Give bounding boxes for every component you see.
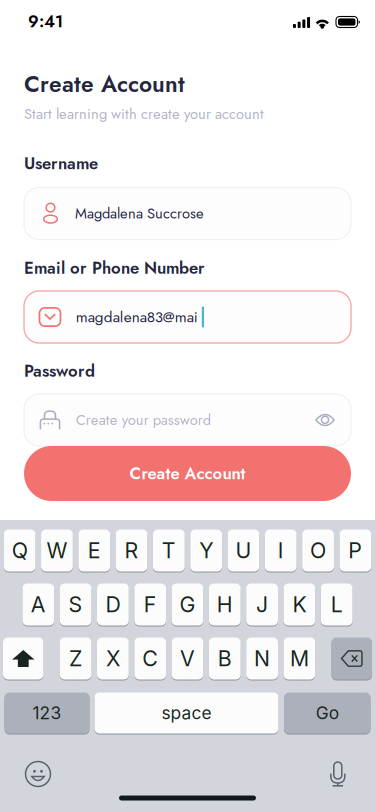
staticText: Y: [199, 538, 213, 563]
button[interactable]: N: [246, 637, 278, 680]
staticText: Username: [24, 151, 98, 176]
staticText: Z: [69, 646, 82, 671]
staticText: Password: [24, 359, 95, 383]
staticText: Start learning with create your account: [24, 103, 264, 125]
button[interactable]: Magdalena Succrose: [24, 187, 351, 239]
staticText: H: [217, 592, 233, 617]
button[interactable]: A: [22, 583, 54, 626]
staticText: E: [88, 538, 101, 563]
button[interactable]: Emoji keyboard: [25, 761, 50, 786]
button[interactable]: Z: [60, 637, 91, 680]
button[interactable]: space: [94, 692, 278, 734]
button[interactable]: E: [78, 529, 110, 572]
staticText: R: [124, 538, 138, 563]
staticText: D: [105, 592, 120, 617]
staticText: G: [179, 592, 195, 617]
button[interactable]: K: [283, 583, 315, 626]
staticText: N: [254, 646, 270, 671]
button[interactable]: X: [97, 637, 129, 680]
button[interactable]: G: [172, 583, 203, 626]
button[interactable]: V: [172, 637, 203, 680]
staticText: A: [31, 592, 46, 617]
button[interactable]: R: [116, 529, 147, 572]
staticText: X: [106, 646, 120, 671]
staticText: O: [310, 538, 326, 563]
button[interactable]: M: [283, 637, 315, 680]
button[interactable]: D: [97, 583, 129, 626]
staticText: J: [256, 592, 268, 617]
button[interactable]: Delete: [331, 637, 372, 680]
button[interactable]: B: [209, 637, 241, 680]
staticText: P: [348, 538, 362, 563]
button[interactable]: J: [246, 583, 278, 626]
staticText: 123: [32, 702, 61, 723]
button[interactable]: Create Account: [24, 446, 351, 501]
staticText: U: [235, 538, 251, 563]
staticText: I: [278, 538, 284, 563]
button[interactable]: C: [134, 637, 166, 680]
staticText: S: [69, 592, 83, 617]
button[interactable]: Shift: [3, 637, 43, 680]
staticText: L: [331, 592, 343, 617]
button[interactable]: U: [227, 529, 259, 572]
staticText: Email or Phone Number: [24, 256, 205, 280]
staticText: Create your password: [76, 409, 211, 431]
staticText: F: [144, 592, 157, 617]
staticText: C: [142, 646, 158, 671]
button[interactable]: Create your password: [24, 394, 351, 446]
staticText: Magdalena Succrose: [75, 203, 204, 224]
staticText: magdalena83@mai: [76, 306, 198, 328]
button[interactable]: P: [339, 529, 371, 572]
button[interactable]: Dictation: [330, 762, 346, 786]
button[interactable]: L: [321, 583, 353, 626]
button[interactable]: F: [134, 583, 166, 626]
button[interactable]: S: [60, 583, 91, 626]
staticText: space: [161, 702, 211, 723]
button[interactable]: magdalena83@mai: [24, 291, 351, 343]
button[interactable]: Q: [4, 529, 36, 572]
button[interactable]: Y: [190, 529, 222, 572]
staticText: B: [218, 646, 232, 671]
staticText: V: [180, 646, 195, 671]
staticText: Q: [12, 538, 28, 563]
button[interactable]: I: [265, 529, 297, 572]
staticText: W: [46, 538, 67, 563]
button[interactable]: H: [209, 583, 241, 626]
staticText: K: [292, 592, 306, 617]
button[interactable]: Go: [284, 692, 370, 734]
button[interactable]: T: [153, 529, 185, 572]
staticText: M: [290, 646, 309, 671]
button[interactable]: 123: [4, 692, 89, 734]
button[interactable]: O: [302, 529, 334, 572]
staticText: 9:41: [28, 9, 63, 34]
staticText: Go: [316, 702, 339, 723]
staticText: T: [162, 538, 176, 563]
staticText: Create Account: [24, 68, 185, 100]
button[interactable]: W: [41, 529, 73, 572]
staticText: Create Account: [129, 461, 245, 486]
